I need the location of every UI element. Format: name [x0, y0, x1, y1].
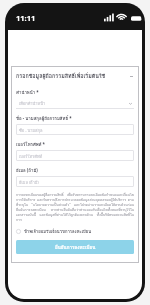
button[interactable]: ชื่อ - นามสกุล — [16, 124, 134, 135]
staticText: การลงทะเบียนของผู้ถือกรรมสิทธิ์ เพื่อรับ… — [16, 192, 134, 222]
staticText: คำนำหน้า * — [16, 89, 39, 96]
staticText: ยืนยันการลงทะเบียน — [55, 244, 96, 251]
staticText: อีเมล (ถ้ามี) — [19, 179, 39, 185]
button[interactable]: เลือกคำนำหน้า — [16, 98, 134, 109]
staticText: เบอร์โทรศัพท์ * — [16, 141, 45, 148]
button[interactable]: เบอร์โทรศัพท์ — [16, 150, 134, 161]
button[interactable]: ยืนยันการลงทะเบียน — [16, 240, 134, 254]
staticText: 11:11 — [16, 13, 36, 23]
staticText: เบอร์โทรศัพท์ — [19, 153, 43, 159]
staticText: ชื่อ - นามสกุล — [19, 127, 43, 133]
button[interactable]: ข้าพเจ้ายอมรับเงื่อนไขการลงทะเบียน — [16, 228, 134, 235]
staticText: อีเมล (ถ้ามี) — [16, 167, 38, 174]
other: Collapse section — [129, 74, 134, 79]
other: Open dropdown — [128, 101, 133, 106]
button[interactable]: อีเมล (ถ้ามี) — [16, 176, 134, 187]
staticText: เลือกคำนำหน้า — [19, 100, 128, 106]
staticText: กรอกข้อมูลผู้ถือกรรมสิทธิ์เพื่อเริ่มต้นใ… — [16, 72, 129, 81]
staticText: ชื่อ - นามสกุลผู้ถือกรรมสิทธิ์ * — [16, 115, 72, 122]
staticText: ข้าพเจ้ายอมรับเงื่อนไขการลงทะเบียน — [24, 228, 92, 235]
button[interactable]: กรอกข้อมูลผู้ถือกรรมสิทธิ์เพื่อเริ่มต้นใ… — [16, 72, 134, 81]
